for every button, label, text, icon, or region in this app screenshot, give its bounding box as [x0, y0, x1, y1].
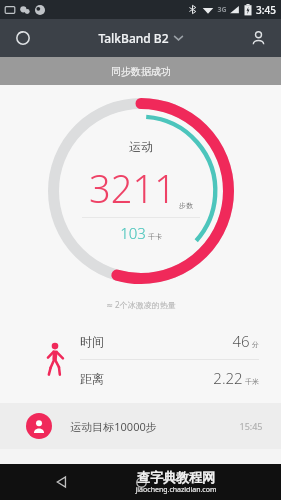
staticText: 3:45	[256, 3, 276, 17]
staticText: 千米	[245, 377, 259, 386]
staticText: 46	[232, 331, 250, 351]
button[interactable]: Back	[43, 464, 79, 500]
button[interactable]: 运动目标10000步	[0, 403, 281, 449]
staticText: 运动	[129, 139, 153, 154]
button[interactable]: TalkBand B2	[92, 26, 189, 50]
button[interactable]: 距离	[80, 360, 281, 396]
button[interactable]: 时间	[80, 323, 281, 359]
button[interactable]: Menu	[8, 23, 38, 53]
staticText: 15:45	[239, 420, 263, 432]
staticText: 分	[252, 340, 259, 349]
staticText: 查字典教程网	[137, 469, 215, 485]
staticText: jiaocheng.chazidian.com	[135, 485, 217, 495]
staticText: 103	[120, 223, 146, 243]
staticText: 步数	[179, 201, 193, 210]
button[interactable]: Home	[123, 464, 159, 500]
staticText: 3G	[217, 5, 227, 15]
button[interactable]: Profile	[243, 23, 273, 53]
staticText: 时间	[80, 334, 104, 349]
staticText: 运动目标10000步	[70, 419, 157, 434]
staticText: 3211	[89, 162, 176, 214]
staticText: 距离	[80, 371, 104, 386]
staticText: 2.22	[213, 368, 243, 388]
staticText: TalkBand B2	[98, 30, 169, 46]
staticText: 同步数据成功	[111, 65, 171, 78]
staticText: ≈ 2个冰激凌的热量	[106, 299, 176, 310]
staticText: 千卡	[148, 232, 162, 241]
